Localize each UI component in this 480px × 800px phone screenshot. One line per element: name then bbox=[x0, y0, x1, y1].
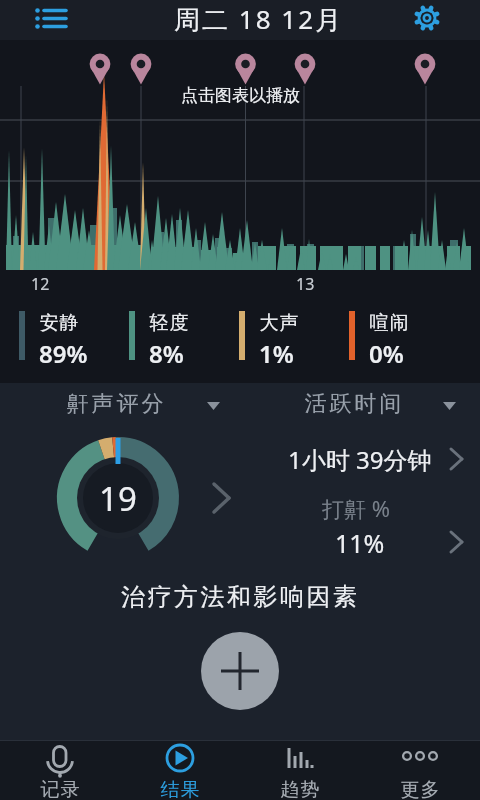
button[interactable]: 1小时 39分钟 bbox=[250, 439, 470, 479]
staticText: 结果 bbox=[160, 778, 200, 800]
staticText: 周二 18 12月 bbox=[174, 1, 344, 37]
staticText: 更多 bbox=[400, 778, 440, 800]
button[interactable] bbox=[201, 632, 279, 710]
staticText: 大声 bbox=[259, 311, 299, 335]
staticText: 记录 bbox=[40, 778, 80, 800]
button[interactable]: 记录 bbox=[0, 740, 120, 800]
staticText: 11% bbox=[335, 526, 385, 560]
button[interactable]: 点击图表以播放 bbox=[0, 40, 480, 272]
staticText: 8% bbox=[149, 337, 184, 370]
staticText: 12 bbox=[31, 273, 50, 295]
button[interactable]: 11% bbox=[280, 525, 440, 561]
staticText: 0% bbox=[369, 337, 404, 370]
staticText: 1小时 39分钟 bbox=[288, 443, 432, 476]
staticText: 89% bbox=[39, 337, 88, 370]
staticText: 轻度 bbox=[149, 311, 189, 335]
button[interactable]: 更多 bbox=[360, 740, 480, 800]
button[interactable]: 鼾声评分 bbox=[55, 388, 235, 420]
staticText: 13 bbox=[296, 273, 315, 295]
staticText: 喧闹 bbox=[369, 311, 409, 335]
button[interactable]: 结果 bbox=[120, 740, 240, 800]
staticText: 治疗方法和影响因素 bbox=[121, 582, 360, 612]
staticText: 安静 bbox=[39, 311, 79, 335]
staticText: 趋势 bbox=[280, 778, 320, 800]
staticText: 打鼾 % bbox=[322, 493, 391, 523]
button[interactable]: 活跃时间 bbox=[295, 388, 470, 420]
staticText: 1% bbox=[259, 337, 294, 370]
button[interactable]: 19 bbox=[57, 437, 179, 559]
button[interactable] bbox=[28, 2, 72, 38]
staticText: 活跃时间 bbox=[303, 390, 403, 418]
staticText: 点击图表以播放 bbox=[181, 85, 300, 106]
button[interactable] bbox=[407, 0, 447, 36]
staticText: 鼾声评分 bbox=[65, 390, 165, 418]
staticText: 19 bbox=[99, 476, 137, 521]
button[interactable]: 趋势 bbox=[240, 740, 360, 800]
